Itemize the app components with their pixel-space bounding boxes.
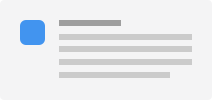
button[interactable]: Loading content xyxy=(0,0,192,78)
